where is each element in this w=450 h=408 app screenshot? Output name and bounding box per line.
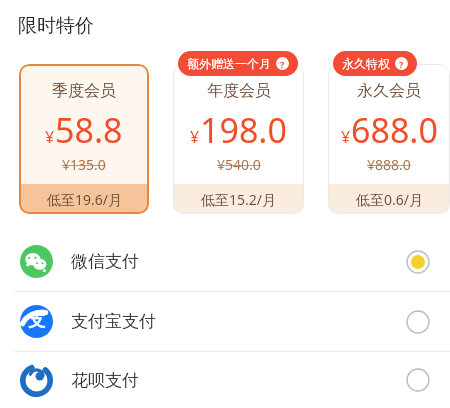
staticText: 低至0.6/月 <box>356 190 423 209</box>
staticText: 额外赠送一个月 <box>187 56 271 71</box>
staticText: ¥ <box>190 126 200 148</box>
button[interactable]: 额外赠送一个月 <box>187 51 289 76</box>
other: Help <box>395 57 408 70</box>
button[interactable]: 微信支付 <box>0 232 450 291</box>
staticText: ¥ <box>45 126 55 148</box>
staticText: 永久特权 <box>342 56 390 71</box>
staticText: 永久会员 <box>357 81 421 101</box>
button[interactable]: 年度会员 <box>173 64 304 214</box>
staticText: 支 <box>28 310 45 331</box>
staticText: ¥135.0 <box>62 155 106 174</box>
staticText: 688.0 <box>351 107 438 153</box>
button[interactable]: 永久特权 <box>342 51 408 76</box>
staticText: 低至19.6/月 <box>47 190 122 209</box>
button[interactable]: 季度会员 <box>19 64 149 214</box>
staticText: 限时特价 <box>18 14 94 38</box>
button[interactable]: 支 <box>0 292 450 351</box>
staticText: ? <box>399 58 404 70</box>
staticText: ? <box>280 58 285 70</box>
staticText: ¥ <box>341 126 351 148</box>
staticText: 198.0 <box>200 107 287 153</box>
other: Help <box>276 57 289 70</box>
button[interactable]: 花呗支付 <box>0 352 450 408</box>
staticText: 季度会员 <box>52 81 116 101</box>
staticText: 58.8 <box>55 107 123 153</box>
staticText: 微信支付 <box>71 251 139 272</box>
staticText: 花呗支付 <box>71 370 139 391</box>
staticText: ¥540.0 <box>217 155 261 174</box>
button[interactable]: 永久会员 <box>328 64 450 214</box>
staticText: 低至15.2/月 <box>201 190 276 209</box>
staticText: ¥888.0 <box>367 155 411 174</box>
staticText: 支付宝支付 <box>71 311 156 332</box>
staticText: 年度会员 <box>207 81 271 101</box>
